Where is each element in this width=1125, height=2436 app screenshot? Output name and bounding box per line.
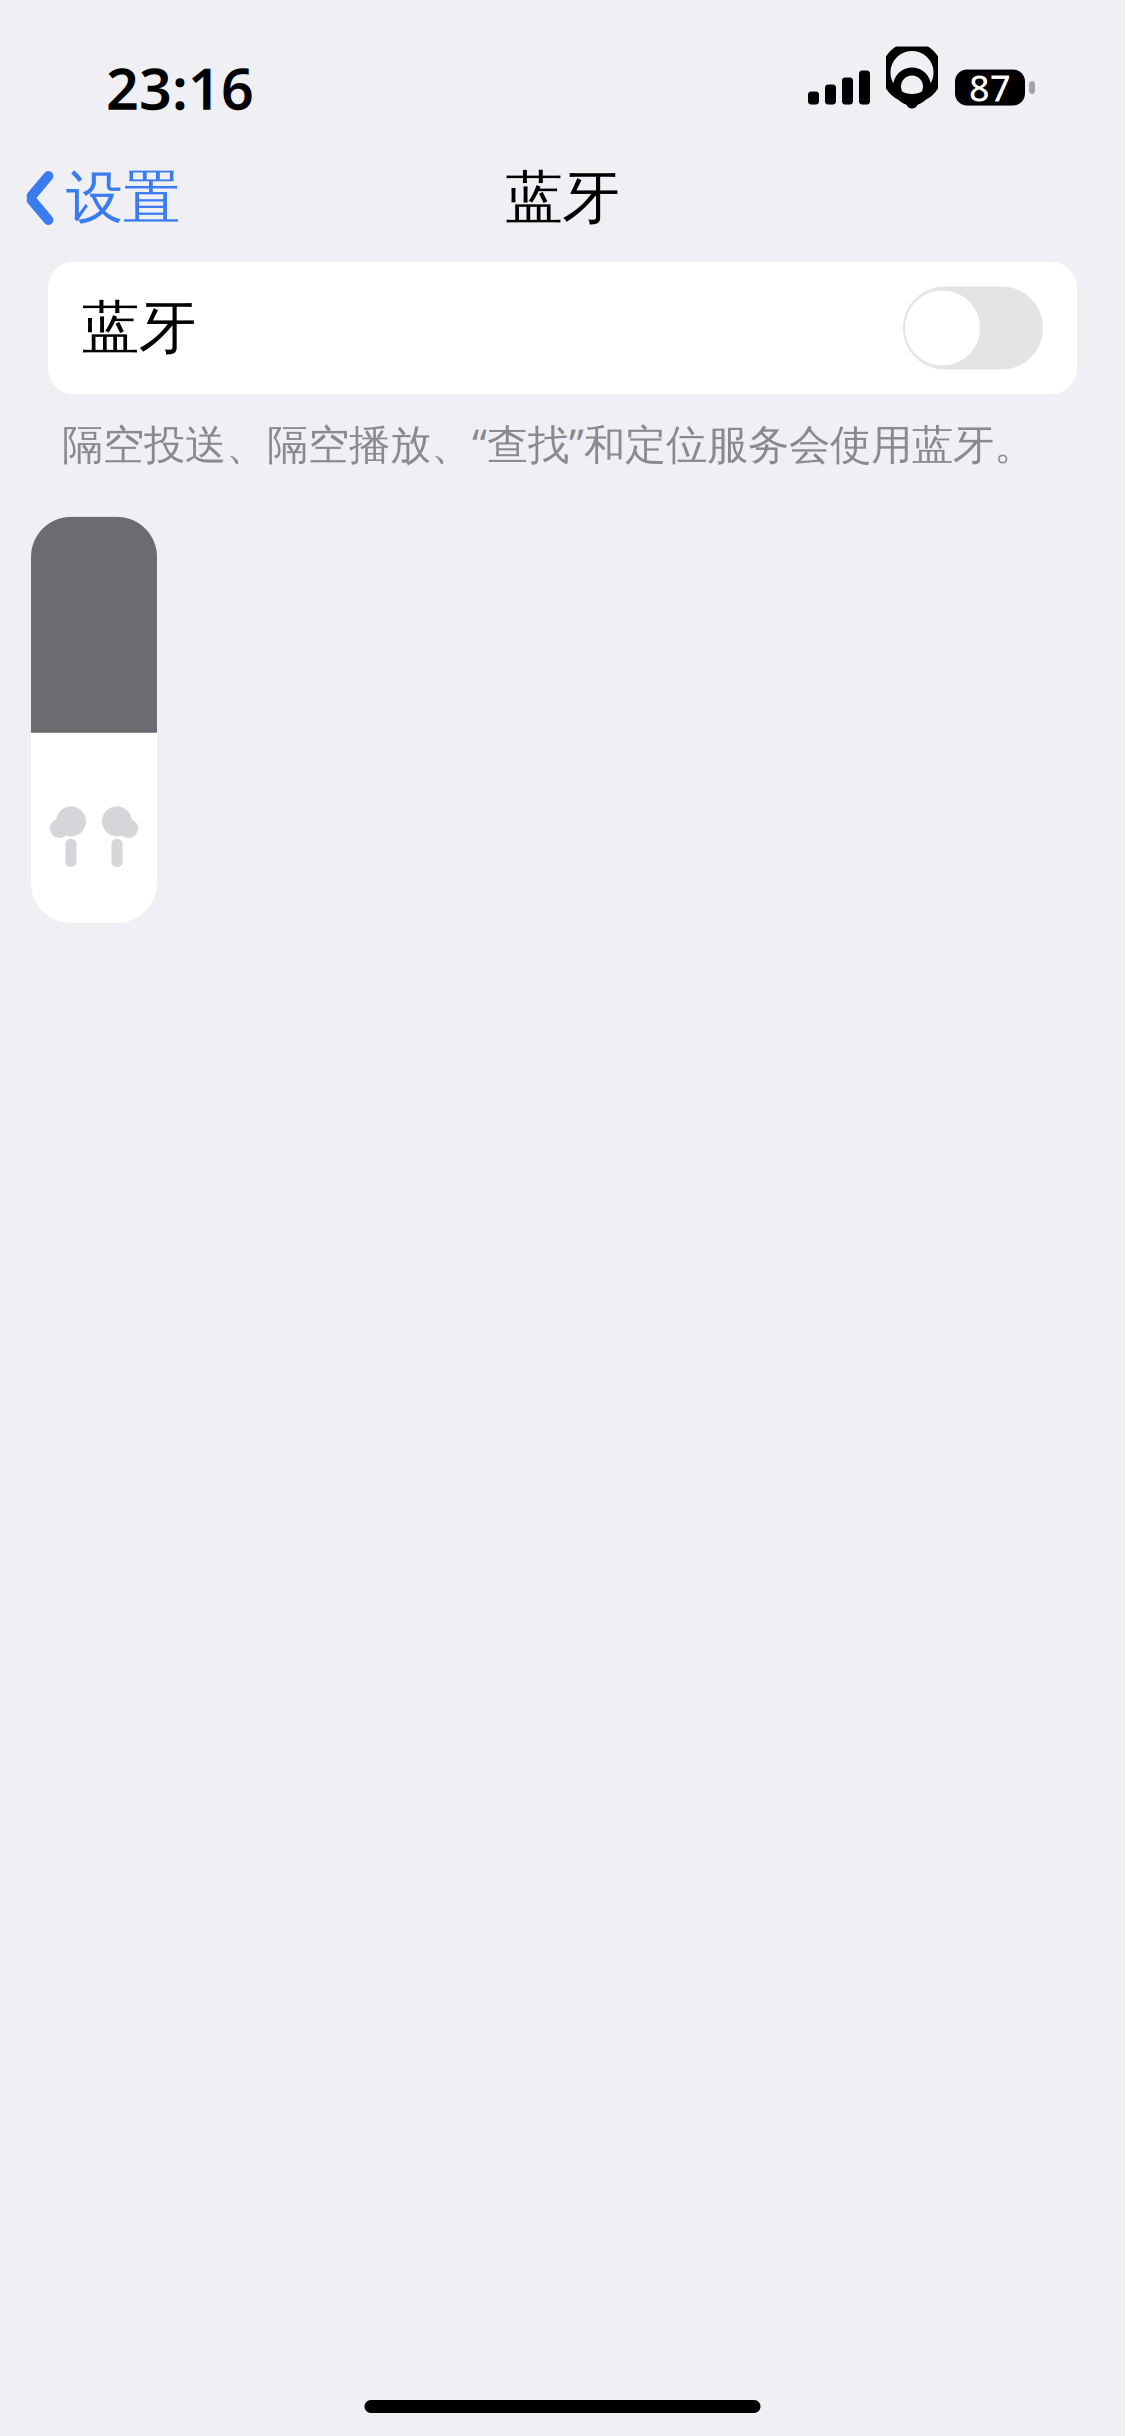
staticText: 蓝牙 [505, 163, 619, 233]
staticText: 蓝牙 [82, 293, 196, 363]
staticText: 设置 [66, 163, 180, 233]
staticText: 23:16 [106, 49, 254, 125]
button[interactable]: 设置 [0, 149, 180, 247]
button[interactable]: 蓝牙 [48, 262, 1077, 394]
staticText: 87 [969, 64, 1011, 111]
button[interactable]: AirPods [31, 517, 157, 923]
staticText: 隔空投送、隔空播放、“查找”和定位服务会使用蓝牙。 [62, 416, 1035, 471]
